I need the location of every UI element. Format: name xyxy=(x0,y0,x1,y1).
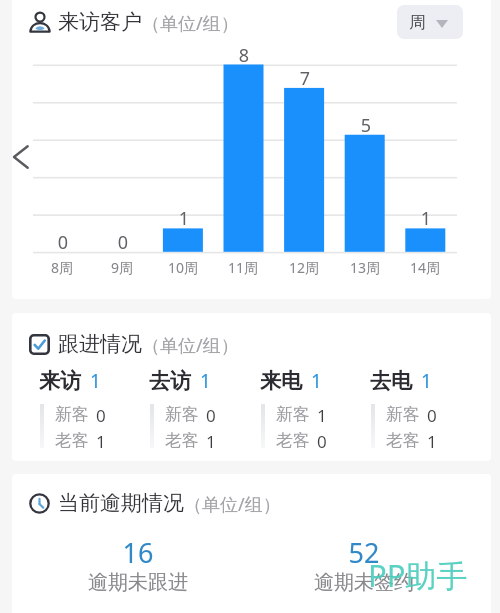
staticText: 14周 xyxy=(390,258,460,277)
staticText: 8 xyxy=(214,43,274,68)
staticText: 老客 xyxy=(55,430,89,451)
button[interactable]: 来访 xyxy=(39,365,143,450)
button[interactable]: 跟进情况 xyxy=(29,331,239,357)
staticText: 0 xyxy=(427,404,437,427)
staticText: 1 xyxy=(311,368,322,394)
staticText: 来访 xyxy=(39,368,81,394)
staticText: 13周 xyxy=(330,258,400,277)
staticText: PP助手 xyxy=(368,554,468,596)
staticText: 去电 xyxy=(370,368,412,394)
staticText: 0 xyxy=(93,230,153,255)
staticText: 1 xyxy=(96,430,106,453)
staticText: 9周 xyxy=(87,258,157,277)
button[interactable]: 来电 xyxy=(260,365,364,450)
staticText: 0 xyxy=(206,404,216,427)
button[interactable]: Previous week range xyxy=(8,142,32,172)
staticText: 新客 xyxy=(165,404,199,425)
button[interactable]: 来访客户 xyxy=(29,9,239,35)
staticText: 7 xyxy=(275,66,335,91)
staticText: 11周 xyxy=(208,258,278,277)
staticText: 16 xyxy=(78,534,198,571)
staticText: 52 xyxy=(304,534,424,571)
staticText: 去访 xyxy=(149,368,191,394)
button[interactable]: 52 xyxy=(304,538,424,598)
button[interactable]: 16 xyxy=(78,538,198,598)
button[interactable]: 周 xyxy=(397,5,463,39)
staticText: （单位/组） xyxy=(184,492,281,517)
button[interactable]: 去电 xyxy=(370,365,474,450)
staticText: 1 xyxy=(427,430,437,453)
staticText: 0 xyxy=(33,230,93,255)
staticText: 老客 xyxy=(165,430,199,451)
staticText: （单位/组） xyxy=(142,11,239,36)
staticText: 逾期未签约 xyxy=(304,570,424,595)
staticText: 新客 xyxy=(276,404,310,425)
button[interactable]: 当前逾期情况 xyxy=(29,490,281,516)
staticText: 1 xyxy=(154,206,214,231)
staticText: 当前逾期情况 xyxy=(58,490,184,516)
staticText: 来访客户 xyxy=(58,9,142,35)
staticText: 0 xyxy=(317,430,327,453)
staticText: （单位/组） xyxy=(142,333,239,358)
staticText: 1 xyxy=(396,206,456,231)
button[interactable]: 去访 xyxy=(149,365,253,450)
staticText: 新客 xyxy=(386,404,420,425)
staticText: 周 xyxy=(409,12,426,33)
staticText: 逾期未跟进 xyxy=(78,570,198,595)
staticText: 老客 xyxy=(386,430,420,451)
staticText: 1 xyxy=(90,368,101,394)
staticText: 5 xyxy=(336,113,396,138)
staticText: 1 xyxy=(206,430,216,453)
staticText: 8周 xyxy=(27,258,97,277)
staticText: 新客 xyxy=(55,404,89,425)
staticText: 12周 xyxy=(269,258,339,277)
staticText: 1 xyxy=(200,368,211,394)
staticText: 老客 xyxy=(276,430,310,451)
staticText: 跟进情况 xyxy=(58,331,142,357)
staticText: 1 xyxy=(317,404,327,427)
staticText: 来电 xyxy=(260,368,302,394)
staticText: 10周 xyxy=(148,258,218,277)
staticText: 0 xyxy=(96,404,106,427)
staticText: 1 xyxy=(421,368,432,394)
